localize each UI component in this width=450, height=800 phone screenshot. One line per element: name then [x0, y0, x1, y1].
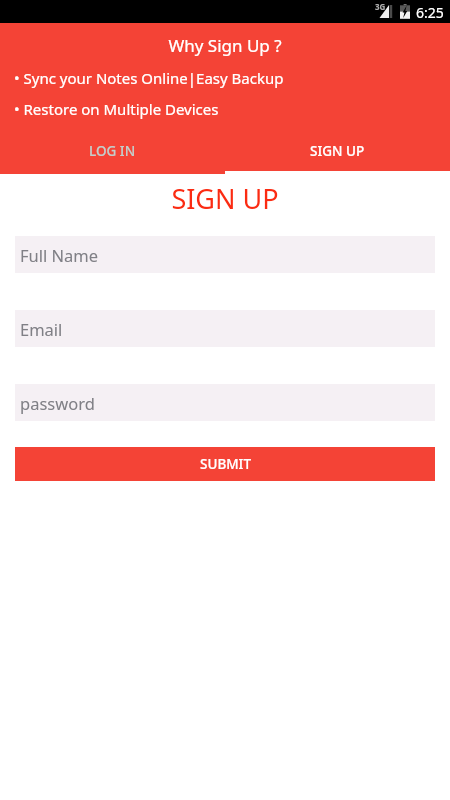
staticText: Full Name [20, 244, 99, 266]
staticText: 3G [375, 1, 386, 12]
staticText: password [20, 392, 95, 414]
button[interactable]: Email [15, 310, 435, 347]
staticText: • Sync your Notes Online|Easy Backup [14, 68, 284, 88]
button[interactable]: LOG IN [0, 131, 225, 171]
staticText: SIGN UP [310, 142, 365, 160]
button[interactable]: SUBMIT [15, 447, 435, 481]
staticText: • Restore on Multiple Devices [14, 99, 219, 119]
button[interactable]: SIGN UP [225, 131, 450, 171]
button[interactable]: password [15, 384, 435, 421]
other: Battery charging [398, 3, 412, 20]
staticText: Why Sign Up ? [0, 34, 450, 57]
staticText: LOG IN [89, 142, 136, 160]
button[interactable]: Full Name [15, 236, 435, 273]
other: Mobile signal 3G [374, 3, 394, 20]
staticText: SUBMIT [200, 455, 251, 473]
staticText: 6:25 [416, 3, 444, 22]
staticText: SIGN UP [0, 180, 450, 217]
staticText: Email [20, 318, 63, 340]
